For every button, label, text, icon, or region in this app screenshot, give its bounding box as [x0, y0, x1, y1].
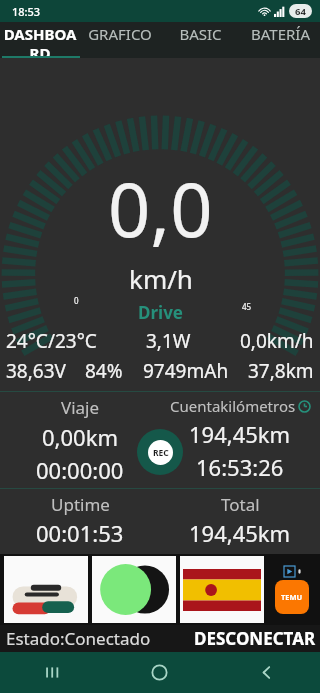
staticText: 37,8km — [248, 358, 314, 384]
staticText: Viaje — [61, 396, 100, 419]
staticText: Estado:Conectado — [6, 627, 151, 650]
staticText: 84% — [85, 358, 123, 384]
staticText: 45 — [242, 301, 252, 312]
staticText: DASHBOARD — [0, 24, 80, 58]
staticText: 9749mAh — [143, 358, 229, 384]
staticText: 0,00km — [42, 422, 118, 452]
button[interactable]: Historial — [298, 400, 311, 413]
staticText: 0,0km/h — [240, 328, 314, 354]
button[interactable]: Grabar — [137, 429, 183, 475]
button[interactable]: Back — [213, 652, 320, 693]
staticText: 0,0 — [108, 158, 213, 259]
staticText: 194,45km — [189, 518, 291, 548]
staticText: 0 — [74, 295, 79, 306]
button[interactable]: BASIC — [160, 22, 240, 58]
staticText: 64 — [295, 5, 306, 18]
staticText: km/h — [129, 261, 193, 296]
button[interactable]: DESCONECTAR — [194, 627, 316, 650]
staticText: 38,63V — [6, 358, 66, 384]
button[interactable]: BATERÍA — [240, 22, 320, 58]
staticText: 3,1W — [146, 328, 191, 354]
staticText: Uptime — [51, 493, 110, 516]
button[interactable]: Home — [106, 652, 213, 693]
staticText: 24°C/23°C — [6, 328, 97, 354]
staticText: BASIC — [179, 24, 222, 44]
staticText: 00:00:00 — [36, 455, 124, 485]
staticText: BATERÍA — [251, 24, 310, 44]
staticText: Drive — [138, 301, 183, 324]
staticText: Cuentakilómetros — [170, 396, 296, 416]
button[interactable]: TEMU — [0, 554, 320, 625]
staticText: REC — [153, 447, 169, 459]
staticText: TEMU — [281, 592, 303, 602]
staticText: DESCONECTAR — [194, 627, 316, 650]
staticText: 194,45km — [189, 419, 291, 449]
staticText: 18:53 — [12, 4, 41, 19]
staticText: GRAFICO — [88, 24, 152, 44]
button[interactable]: Recents — [0, 652, 106, 693]
staticText: 16:53:26 — [196, 452, 284, 482]
button[interactable]: GRAFICO — [80, 22, 160, 58]
staticText: 00:01:53 — [36, 518, 124, 548]
staticText: Total — [221, 493, 260, 516]
button[interactable]: DASHBOARD — [0, 22, 80, 58]
